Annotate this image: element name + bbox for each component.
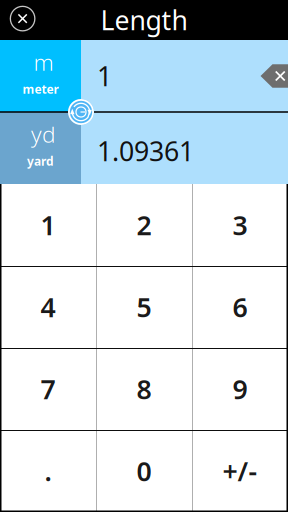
button[interactable]: yd (0, 112, 81, 184)
button[interactable]: 0 (96, 430, 192, 512)
staticText: 6 (232, 289, 247, 325)
button[interactable]: . (0, 430, 96, 512)
staticText: meter (22, 81, 58, 97)
staticText: 7 (40, 371, 55, 407)
staticText: 3 (232, 207, 247, 243)
button[interactable]: +/- (192, 430, 288, 512)
button[interactable]: 1 (81, 40, 288, 112)
staticText: +/- (222, 453, 257, 489)
staticText: 1.09361 (97, 133, 194, 169)
button[interactable]: 7 (0, 348, 96, 430)
button[interactable]: 1 (0, 184, 96, 266)
button[interactable]: 4 (0, 266, 96, 348)
button[interactable]: Swap units (68, 99, 94, 125)
button[interactable]: 6 (192, 266, 288, 348)
button[interactable]: 9 (192, 348, 288, 430)
staticText: yd (31, 119, 56, 149)
button[interactable]: 2 (96, 184, 192, 266)
staticText: Length (100, 2, 187, 38)
button[interactable]: 8 (96, 348, 192, 430)
staticText: . (44, 453, 51, 489)
staticText: 1 (97, 58, 112, 94)
staticText: m (33, 47, 53, 77)
staticText: 4 (40, 289, 55, 325)
staticText: 5 (136, 289, 151, 325)
staticText: 8 (136, 371, 151, 407)
button[interactable]: m (0, 40, 81, 112)
button[interactable]: 1.09361 (81, 112, 288, 184)
staticText: 0 (136, 453, 151, 489)
button[interactable]: 3 (192, 184, 288, 266)
button[interactable]: Close (0, 0, 45, 39)
staticText: yard (27, 153, 54, 169)
staticText: 9 (232, 371, 247, 407)
staticText: 2 (136, 207, 151, 243)
staticText: 1 (40, 207, 55, 243)
button[interactable]: 5 (96, 266, 192, 348)
